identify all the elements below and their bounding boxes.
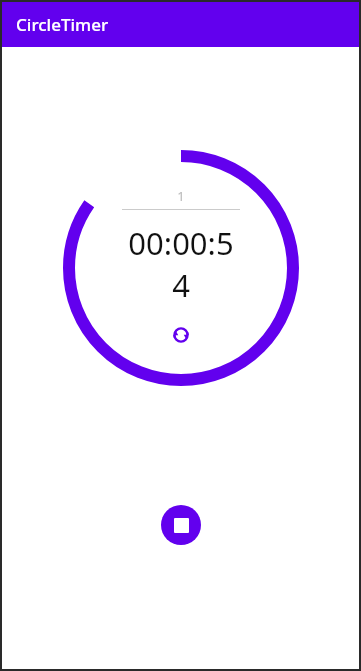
button[interactable]: 1 <box>122 187 240 210</box>
button[interactable]: Stop <box>161 505 201 545</box>
staticText: 00:00:54 <box>122 222 240 306</box>
staticText: CircleTimer <box>16 13 109 36</box>
staticText: 1 <box>177 187 185 205</box>
button[interactable]: Repeat <box>166 320 196 350</box>
